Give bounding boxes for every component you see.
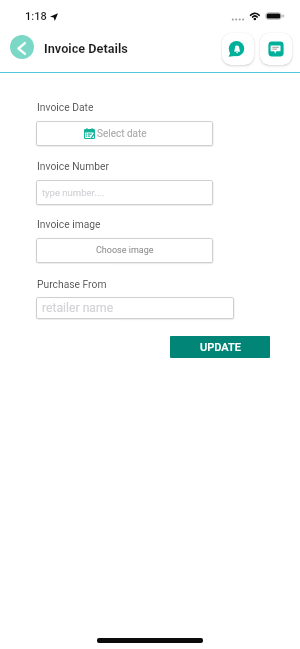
staticText: type number....	[42, 187, 105, 198]
staticText: Invoice Details	[44, 41, 128, 56]
button[interactable]: Messages	[260, 33, 292, 65]
staticText: UPDATE	[200, 341, 241, 354]
button[interactable]: Back	[10, 35, 34, 59]
button[interactable]: Select date	[36, 121, 213, 146]
staticText: Choose image	[96, 245, 154, 256]
staticText: Invoice Number	[37, 160, 109, 172]
staticText: Invoice image	[37, 218, 101, 230]
button[interactable]: Choose image	[36, 238, 213, 263]
staticText: Invoice Date	[37, 101, 94, 113]
button[interactable]: retailer name	[36, 297, 234, 319]
button[interactable]: Notifications	[222, 33, 254, 65]
staticText: retailer name	[42, 301, 114, 315]
button[interactable]: type number....	[36, 180, 213, 205]
staticText: Purchase From	[37, 278, 107, 290]
staticText: Select date	[97, 128, 147, 140]
staticText: 1:18	[25, 10, 47, 23]
button[interactable]: UPDATE	[170, 336, 270, 358]
